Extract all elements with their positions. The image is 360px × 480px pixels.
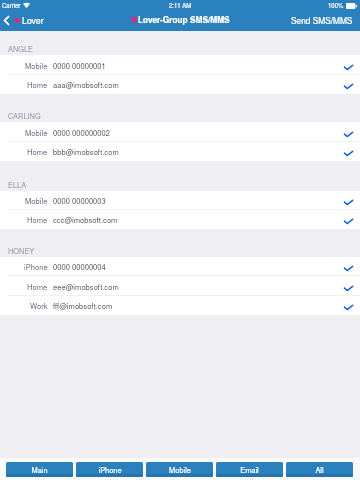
button[interactable]: Send SMS/MMS [290,12,354,28]
button[interactable]: Home [0,142,360,161]
staticText: iPhone [98,465,122,476]
staticText: ANGLE [8,44,34,55]
staticText: fff@imobsoft.com [53,300,113,311]
staticText: Main [31,465,48,476]
staticText: Mobile [25,60,48,71]
staticText: CARLING [8,111,41,122]
staticText: ELLA [8,180,27,191]
button[interactable]: Home [0,210,360,229]
staticText: ccc@imobsoft.com [53,214,118,225]
staticText: 0000 00000004 [53,261,106,272]
button[interactable]: Home [0,75,360,94]
button[interactable]: Mobile [0,122,360,142]
staticText: aaa@imobsoft.com [53,79,119,90]
button[interactable]: All [286,462,353,477]
staticText: eee@imobsoft.com [53,281,119,292]
staticText: Email [240,465,259,476]
staticText: Mobile [169,465,191,476]
staticText: Lover [22,14,44,27]
button[interactable]: Email [216,462,283,477]
button[interactable]: iPhone [0,257,360,276]
staticText: Work [30,300,48,311]
button[interactable]: Mobile [0,55,360,75]
button[interactable]: iPhone [76,462,143,477]
staticText: 0000 00000001 [53,60,106,71]
staticText: Home [27,79,48,90]
button[interactable]: Back to Lover [0,13,46,28]
button[interactable]: Home [0,276,360,296]
staticText: HONEY [8,246,35,257]
button[interactable]: Work [0,296,360,315]
staticText: 2:11 AM [169,1,192,10]
staticText: All [315,465,324,476]
button[interactable]: Mobile [146,462,213,477]
staticText: Mobile [25,127,48,138]
staticText: Home [27,281,48,292]
staticText: bbb@imobsoft.com [53,146,119,157]
staticText: Lover-Group SMS/MMS [138,14,230,26]
staticText: Mobile [25,195,48,206]
staticText: 100% [328,1,344,10]
staticText: Home [27,214,48,225]
staticText: Carrier [2,1,21,10]
staticText: Send SMS/MMS [291,14,353,26]
staticText: iPhone [24,261,48,272]
button[interactable]: Main [6,462,73,477]
staticText: 0000 00000003 [53,195,106,206]
button[interactable]: Mobile [0,191,360,210]
staticText: 0000 000000002 [53,127,110,138]
staticText: Home [27,146,48,157]
